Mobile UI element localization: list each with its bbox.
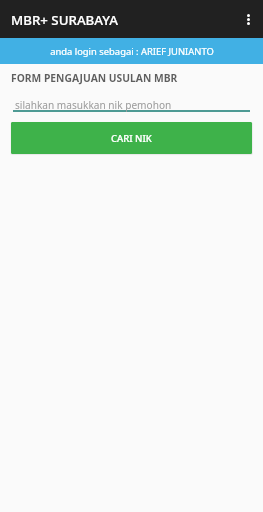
button[interactable]: silahkan masukkan nik pemohon [13, 92, 250, 112]
button[interactable]: anda login sebagai : ARIEF JUNIANTO [0, 38, 263, 64]
staticText: silahkan masukkan nik pemohon [15, 98, 172, 112]
staticText: CARI NIK [111, 132, 152, 145]
button[interactable]: More options [234, 0, 263, 38]
staticText: MBR+ SURABAYA [11, 11, 118, 29]
button[interactable]: CARI NIK [11, 122, 252, 154]
staticText: FORM PENGAJUAN USULAN MBR [11, 71, 178, 85]
staticText: anda login sebagai : ARIEF JUNIANTO [50, 45, 214, 58]
